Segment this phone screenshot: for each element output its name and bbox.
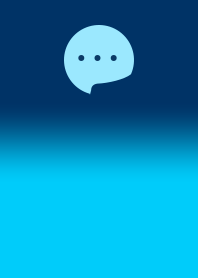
- button[interactable]: Messages: [64, 25, 134, 95]
